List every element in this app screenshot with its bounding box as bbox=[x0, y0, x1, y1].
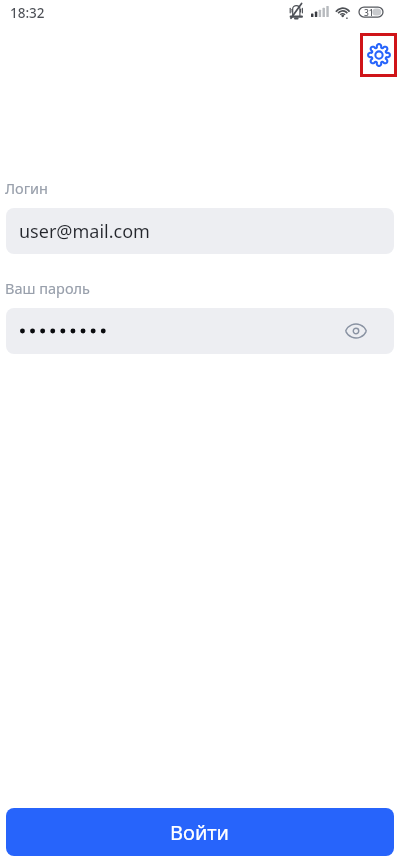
staticText: Логин bbox=[5, 178, 48, 198]
button[interactable]: Войти bbox=[6, 808, 394, 856]
staticText: Ваш пароль bbox=[5, 278, 90, 298]
button[interactable]: Show password bbox=[6, 308, 394, 354]
staticText: user@mail.com bbox=[19, 219, 150, 244]
button[interactable]: user@mail.com bbox=[6, 208, 394, 254]
staticText: 31 bbox=[364, 7, 374, 17]
button[interactable]: Settings bbox=[360, 33, 397, 77]
button[interactable]: Show password bbox=[343, 318, 369, 344]
staticText: 18:32 bbox=[10, 4, 45, 22]
staticText: Войти bbox=[170, 819, 230, 846]
